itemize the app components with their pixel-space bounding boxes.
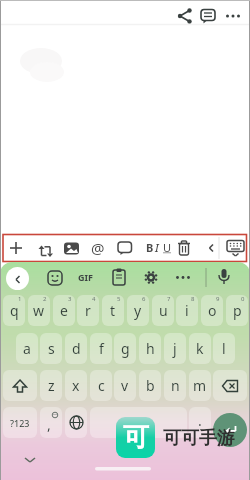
button[interactable]: f [90, 333, 112, 364]
staticText: , [47, 415, 51, 434]
staticText: b [146, 376, 155, 395]
staticText: p [233, 301, 242, 320]
button[interactable]: . [189, 407, 211, 438]
button[interactable]: d [65, 333, 87, 364]
button[interactable]: l [213, 333, 235, 364]
button[interactable] [223, 236, 247, 260]
staticText: d [72, 339, 81, 358]
button[interactable]: x [65, 370, 87, 401]
staticText: n [171, 376, 180, 395]
button[interactable]: n [164, 370, 186, 401]
button[interactable] [65, 407, 87, 438]
staticText: l [222, 339, 226, 358]
staticText: t [110, 301, 116, 320]
staticText: i [185, 301, 189, 320]
staticText: ?123 [10, 417, 30, 429]
button[interactable]: c [90, 370, 112, 401]
button[interactable]: i [176, 295, 198, 326]
button[interactable]: q [3, 295, 25, 326]
button[interactable] [211, 265, 237, 291]
button[interactable]: t [102, 295, 124, 326]
staticText: u [159, 301, 168, 320]
button[interactable] [90, 407, 187, 438]
staticText: 3 [68, 295, 72, 303]
button[interactable]: m [189, 370, 211, 401]
button[interactable] [138, 265, 164, 291]
button[interactable] [73, 265, 99, 291]
staticText: z [48, 376, 55, 395]
button[interactable] [113, 236, 137, 260]
button[interactable] [146, 236, 170, 260]
button[interactable] [42, 265, 68, 291]
button[interactable]: o [201, 295, 223, 326]
button[interactable] [86, 236, 110, 260]
staticText: 7 [167, 295, 171, 303]
staticText: x [72, 376, 80, 395]
button[interactable]: g [114, 333, 136, 364]
button[interactable] [106, 265, 132, 291]
button[interactable]: r [77, 295, 99, 326]
staticText: c [98, 376, 105, 395]
button[interactable]: k [189, 333, 211, 364]
staticText: . [198, 411, 202, 430]
staticText: s [48, 339, 55, 358]
button[interactable]: z [40, 370, 62, 401]
button[interactable] [199, 236, 223, 260]
staticText: U [163, 240, 172, 255]
button[interactable]: b [139, 370, 161, 401]
button[interactable] [199, 7, 217, 25]
button[interactable] [224, 7, 242, 25]
staticText: 6 [142, 295, 146, 303]
staticText: g [121, 339, 130, 358]
staticText: 1 [18, 295, 22, 303]
button[interactable]: y [127, 295, 149, 326]
staticText: f [99, 339, 104, 358]
staticText: e [60, 301, 68, 320]
staticText: w [33, 301, 45, 320]
button[interactable]: a [16, 333, 38, 364]
button[interactable] [6, 267, 29, 290]
staticText: 可可手游 [163, 427, 235, 450]
staticText: GIF [78, 271, 93, 283]
staticText: h [146, 339, 155, 358]
button[interactable] [31, 236, 55, 260]
staticText: o [208, 301, 217, 320]
staticText: k [196, 339, 204, 358]
staticText: 2 [43, 295, 47, 303]
button[interactable] [213, 413, 247, 447]
staticText: 8 [191, 295, 195, 303]
button[interactable] [59, 236, 83, 260]
staticText: q [10, 301, 19, 320]
staticText: 9 [216, 295, 220, 303]
staticText: 可 [123, 421, 149, 454]
staticText: B [146, 240, 154, 255]
staticText: 5 [117, 295, 121, 303]
button[interactable] [3, 370, 37, 401]
button[interactable] [170, 265, 196, 291]
button[interactable] [213, 370, 247, 401]
button[interactable]: u [152, 295, 174, 326]
button[interactable]: e [53, 295, 75, 326]
staticText: r [85, 301, 91, 320]
button[interactable]: w [28, 295, 50, 326]
button[interactable] [4, 236, 28, 260]
button[interactable]: p [226, 295, 248, 326]
button[interactable]: j [164, 333, 186, 364]
staticText: v [121, 376, 129, 395]
staticText: 0 [241, 295, 245, 303]
button[interactable]: v [114, 370, 136, 401]
staticText: a [23, 339, 31, 358]
button[interactable]: s [40, 333, 62, 364]
button[interactable] [176, 7, 194, 25]
button[interactable]: ?123 [3, 407, 37, 438]
staticText: I [155, 240, 159, 255]
staticText: m [193, 376, 207, 395]
button[interactable] [172, 236, 196, 260]
staticText: @ [91, 238, 105, 258]
staticText: j [173, 339, 177, 358]
button[interactable]: h [139, 333, 161, 364]
staticText: y [134, 301, 142, 320]
staticText: 4 [92, 295, 96, 303]
button[interactable]: , [40, 407, 62, 438]
